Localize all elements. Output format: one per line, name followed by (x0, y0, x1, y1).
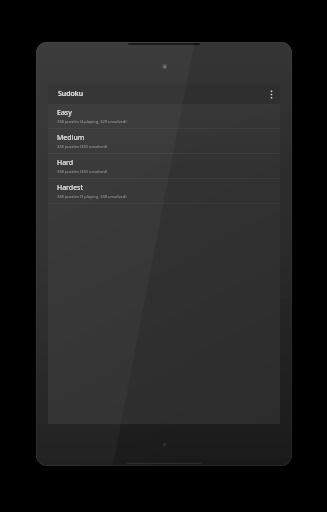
button[interactable]: More options (262, 84, 280, 104)
staticText: 338 puzzles (4 playing, 329 unsolved) (57, 119, 127, 124)
staticText: Hard (57, 158, 74, 168)
button[interactable]: Hard (48, 154, 280, 178)
staticText: 338 puzzles (3 playing, 338 unsolved) (57, 194, 127, 199)
staticText: 338 puzzles (330 unsolved) (57, 144, 108, 149)
button[interactable]: Medium (48, 129, 280, 153)
staticText: Medium (57, 133, 85, 143)
staticText: Sudoku (58, 89, 84, 99)
staticText: 338 puzzles (330 unsolved) (57, 169, 108, 174)
button[interactable]: Easy (48, 104, 280, 128)
staticText: Easy (57, 108, 72, 118)
button[interactable]: Hardest (48, 179, 280, 203)
staticText: Hardest (57, 183, 83, 193)
